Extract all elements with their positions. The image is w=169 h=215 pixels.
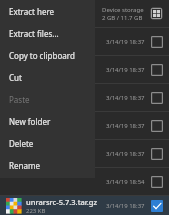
button[interactable]: Extract here <box>0 0 95 22</box>
staticText: 3/14/19 18:37 <box>106 38 145 46</box>
staticText: unrarsrc-5.7.3.tar.gz <box>26 197 98 207</box>
staticText: Cut <box>9 72 22 83</box>
button[interactable]: Extract files... <box>0 22 95 44</box>
button[interactable]: 3/14/19 18:37 <box>0 28 169 55</box>
button[interactable]: Select item <box>151 200 163 212</box>
button[interactable]: Select item <box>151 36 163 48</box>
staticText: Paste <box>9 94 30 105</box>
button[interactable]: 3/14/19 18:37 <box>0 84 169 111</box>
staticText: 3/14/19 18:54 <box>106 178 145 186</box>
button[interactable]: 3/14/19 18:37 <box>0 140 169 167</box>
staticText: Rename <box>9 160 40 171</box>
button[interactable]: 3/14/19 18:54 <box>0 168 169 195</box>
staticText: New folder <box>9 116 51 127</box>
staticText: 3/14/19 18:37 <box>106 202 145 210</box>
staticText: Extract files... <box>9 28 59 39</box>
staticText: 3/14/19 18:37 <box>106 66 145 74</box>
button[interactable]: New folder <box>0 110 95 132</box>
staticText: 3/14/19 18:37 <box>106 122 145 130</box>
staticText: Copy to clipboard <box>9 50 75 61</box>
staticText: 2 GB / 11.7 GB <box>102 14 143 22</box>
button[interactable]: Delete <box>0 132 95 154</box>
button: Paste <box>0 88 95 110</box>
button[interactable]: Select item <box>151 176 163 188</box>
button[interactable]: 3/14/19 18:37 <box>0 112 169 139</box>
button[interactable]: Copy to clipboard <box>0 44 95 66</box>
button[interactable]: 3/14/19 18:37 <box>0 56 169 83</box>
button[interactable]: Grid view <box>150 7 163 20</box>
staticText: 3/14/19 18:37 <box>106 150 145 158</box>
staticText: Device storage <box>102 6 144 14</box>
button[interactable]: Select item <box>151 64 163 76</box>
button[interactable]: Device storage <box>0 0 169 27</box>
staticText: Delete <box>9 138 34 149</box>
button[interactable]: Select item <box>151 92 163 104</box>
button[interactable]: Cut <box>0 66 95 88</box>
button[interactable]: Select item <box>151 120 163 132</box>
button[interactable]: Select item <box>151 148 163 160</box>
button[interactable]: unrarsrc-5.7.3.tar.gz <box>0 196 169 215</box>
staticText: 223 KB <box>26 207 46 215</box>
button[interactable]: Rename <box>0 154 95 176</box>
staticText: 3/14/19 18:37 <box>106 94 145 102</box>
staticText: Extract here <box>9 6 55 17</box>
